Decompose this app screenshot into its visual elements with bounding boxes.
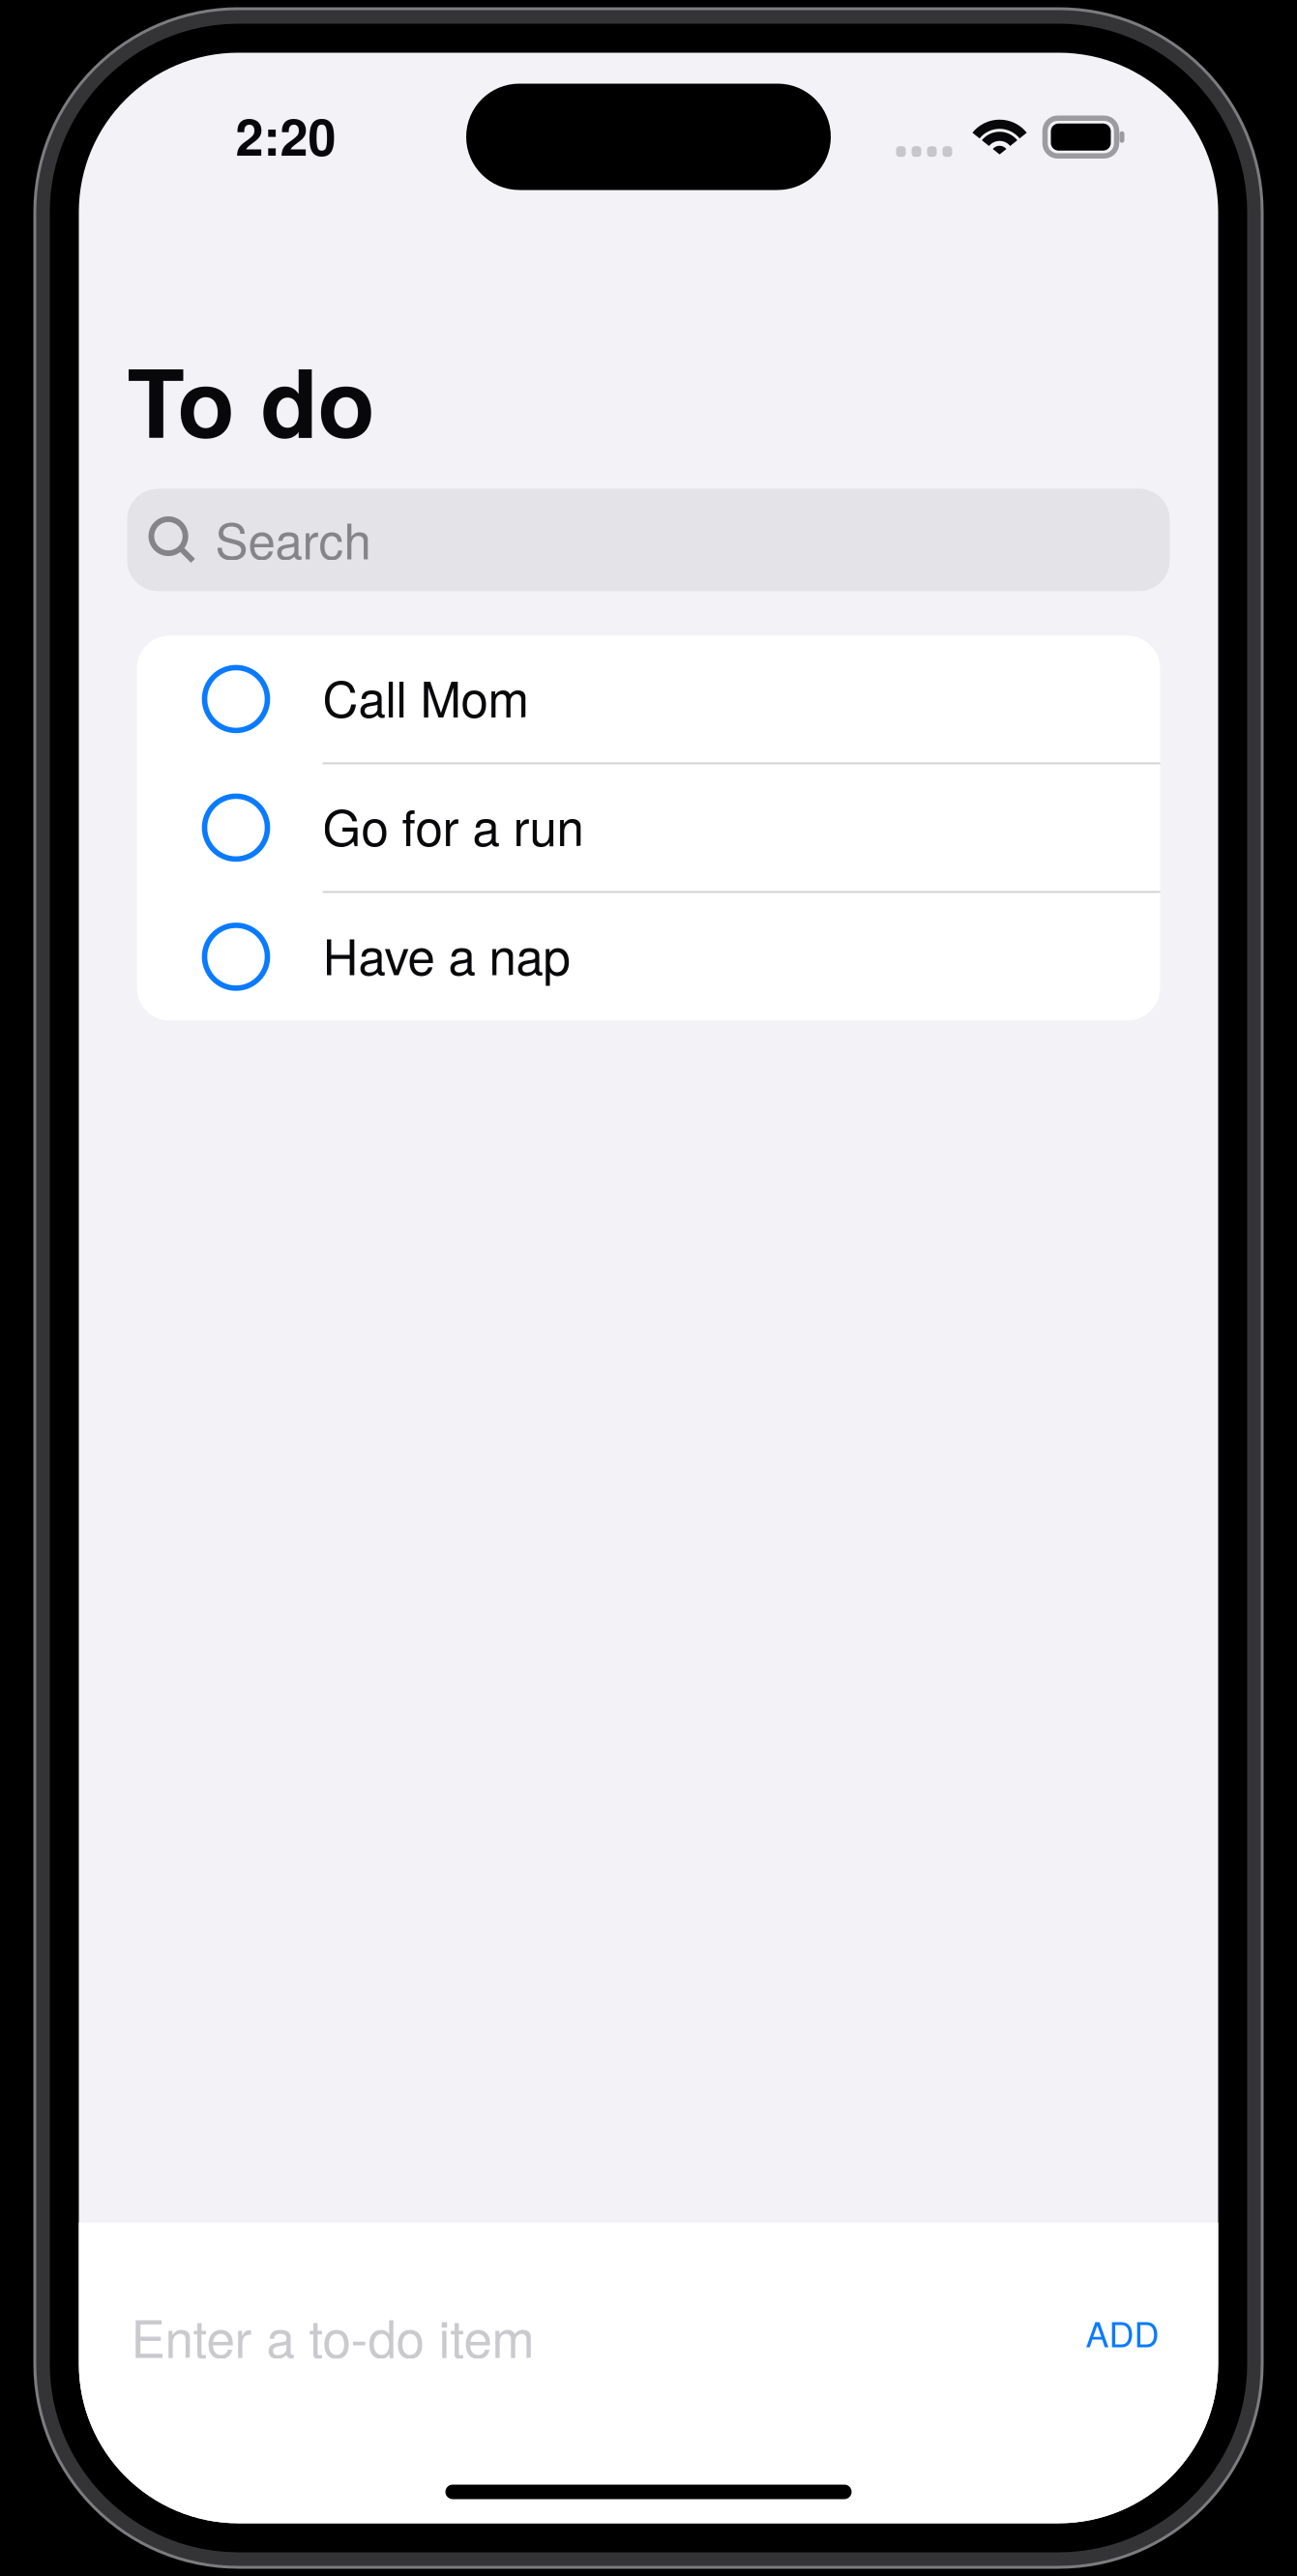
button[interactable]: Have a nap (137, 893, 1160, 1021)
staticText: Go for a run (323, 789, 584, 860)
button[interactable]: Go for a run (137, 764, 1160, 893)
button[interactable]: Enter a to-do item (131, 2276, 1057, 2396)
staticText: Call Mom (323, 661, 529, 731)
staticText: ADD (1086, 2307, 1159, 2357)
staticText: Search (215, 503, 371, 573)
staticText: Enter a to-do item (131, 2299, 534, 2372)
staticText: To do (127, 332, 375, 466)
staticText: 2:20 (236, 99, 336, 171)
button[interactable]: ADD (1057, 2291, 1161, 2380)
button[interactable]: Search (127, 489, 1170, 591)
button[interactable]: Call Mom (137, 636, 1160, 764)
staticText: Have a nap (323, 919, 570, 989)
